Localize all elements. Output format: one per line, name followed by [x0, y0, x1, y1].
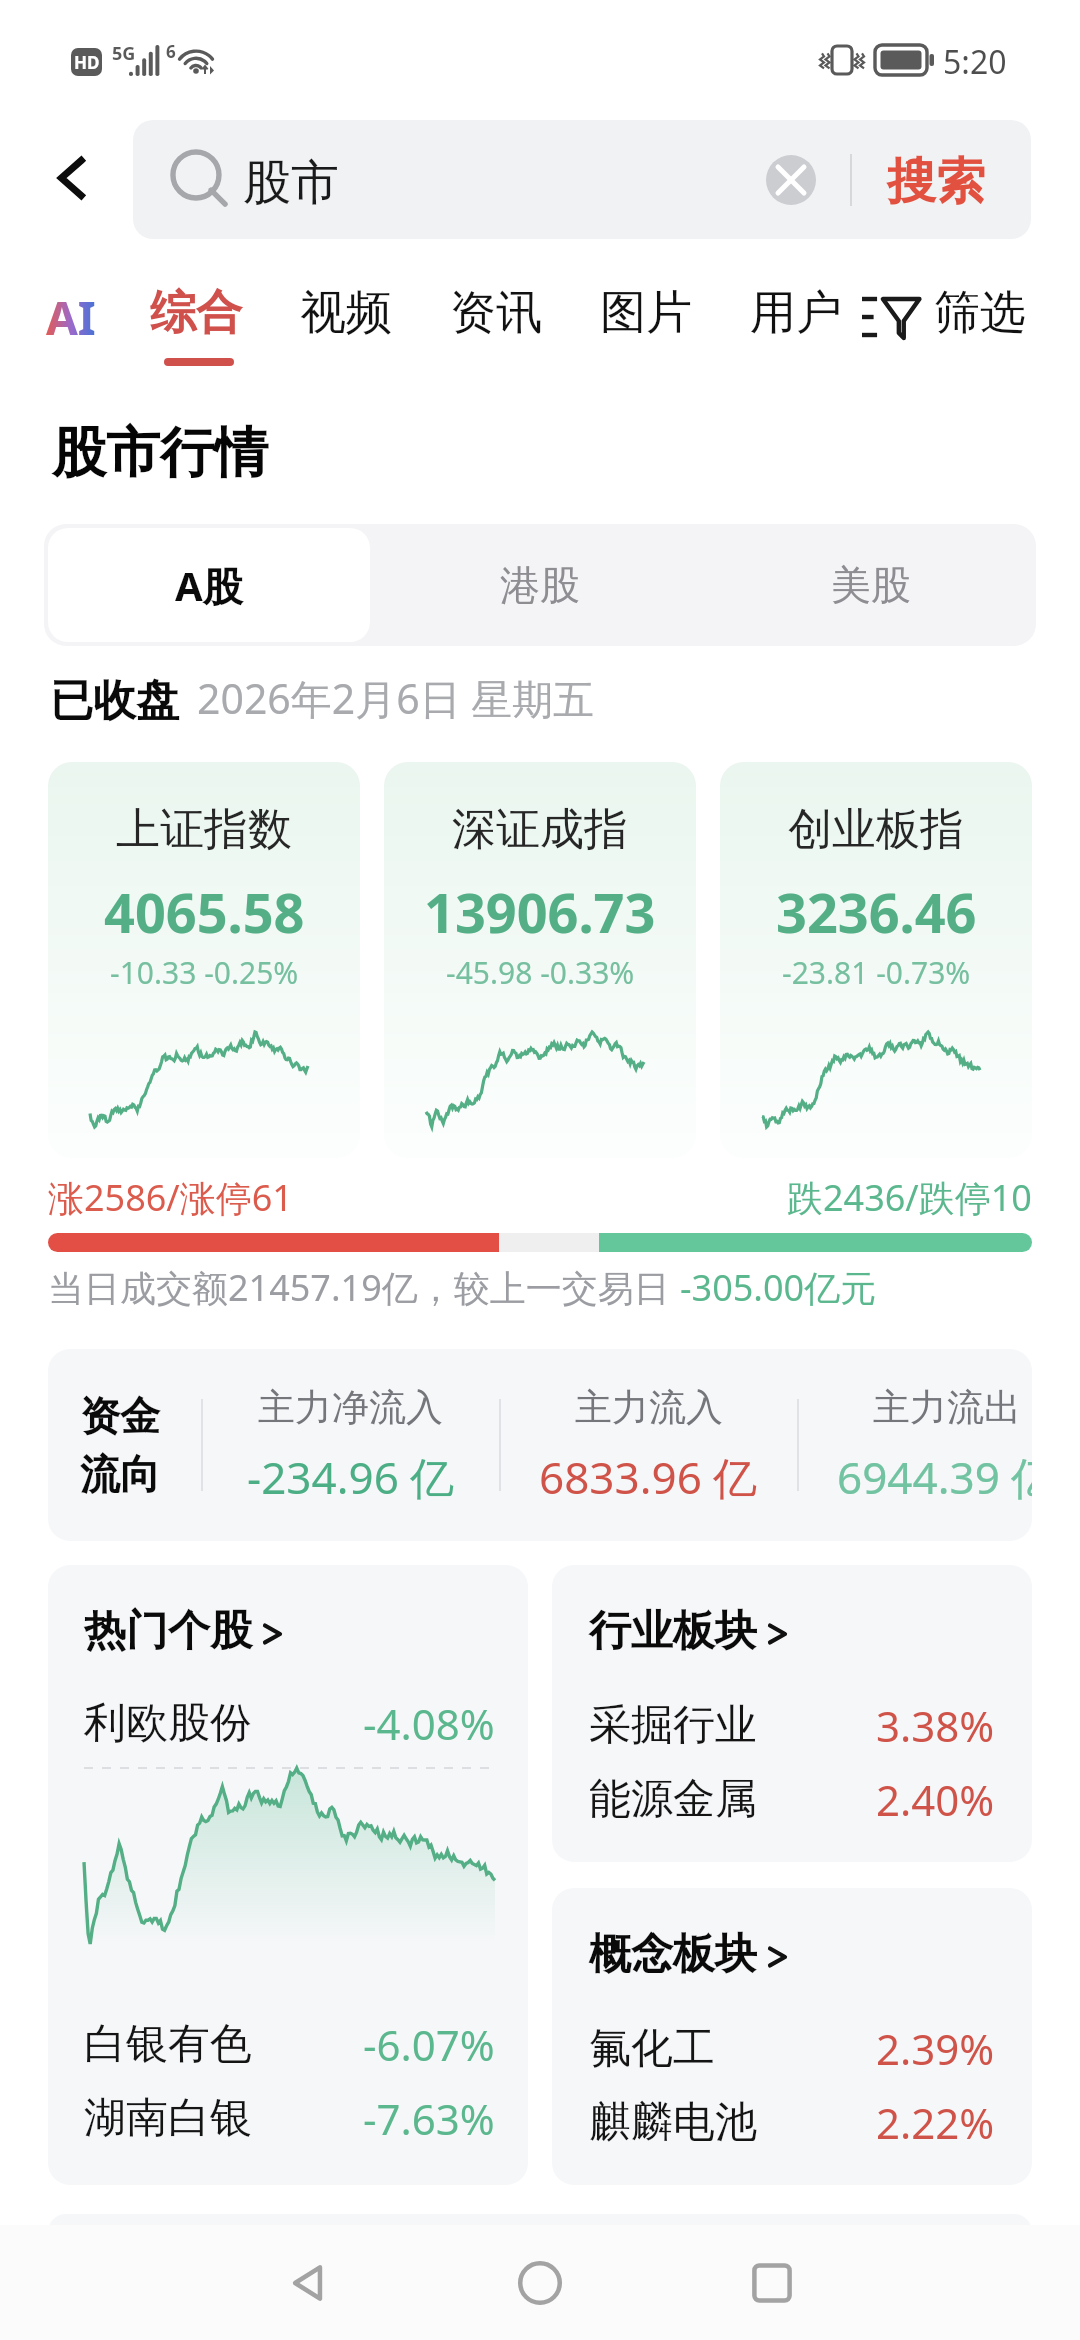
staticText: 深证成指 [452, 802, 628, 857]
button[interactable]: 热门个股 [84, 1605, 282, 1658]
staticText: 筛选 [934, 284, 1026, 342]
staticText: 2.22% [876, 2094, 995, 2151]
staticText: -234.96 亿 [247, 1447, 455, 1507]
staticText: 6944.39 亿 [837, 1447, 1032, 1507]
staticText: 热门个股 [84, 1605, 252, 1658]
staticText: -6.07% [363, 2016, 495, 2073]
staticText: 创业板指 [788, 802, 964, 857]
button[interactable]: 最近任务 [722, 2233, 822, 2333]
staticText: -23.81 -0.73% [782, 952, 971, 993]
staticText: 综合 [150, 284, 242, 342]
staticText: 主力流入 [575, 1384, 723, 1431]
staticText: 利欧股份 [84, 1697, 252, 1750]
staticText: 行业板块 [589, 1605, 757, 1658]
staticText: 已收盘 [50, 674, 179, 728]
button[interactable]: 图片 [600, 284, 692, 342]
staticText: 2.40% [876, 1771, 995, 1828]
staticText: A股 [175, 558, 243, 613]
button[interactable]: 资讯 [450, 284, 542, 342]
staticText: -4.08% [363, 1695, 495, 1752]
button[interactable]: 创业板指 [720, 762, 1032, 1158]
button[interactable]: A股 [48, 528, 370, 642]
staticText: 上证指数 [116, 802, 292, 857]
button[interactable]: 返回 [24, 128, 120, 228]
staticText: 采掘行业 [589, 1699, 757, 1752]
button[interactable]: 氟化工 [589, 2011, 995, 2085]
staticText: 股市 [243, 153, 339, 213]
staticText: 麒麟电池 [589, 2096, 757, 2149]
staticText: 搜索 [887, 151, 985, 213]
staticText: 涨2586/涨停61 [48, 1173, 293, 1222]
button[interactable]: 美股 [705, 524, 1036, 646]
button[interactable]: 深证成指 [384, 762, 696, 1158]
staticText: 能源金属 [589, 1773, 757, 1826]
button[interactable]: 股市 [133, 120, 1031, 239]
button[interactable]: 资金 [48, 1349, 1032, 1541]
staticText: 概念板块 [589, 1928, 757, 1981]
staticText: 3.38% [876, 1697, 995, 1754]
staticText: 美股 [831, 560, 911, 610]
button[interactable]: 能源金属 [589, 1762, 995, 1836]
staticText: 5:20 [943, 40, 1007, 84]
button[interactable]: 综合 [150, 284, 250, 376]
staticText: 主力流出 [873, 1384, 1021, 1431]
button[interactable]: 上证指数 [48, 762, 360, 1158]
button[interactable]: 概念板块 [589, 1928, 787, 1981]
staticText: 主力净流入 [258, 1384, 443, 1431]
staticText: 氟化工 [589, 2022, 715, 2075]
staticText: 6 [166, 40, 176, 63]
button[interactable]: 视频 [300, 284, 392, 342]
button[interactable]: 麒麟电池 [589, 2085, 995, 2159]
button[interactable]: 港股 [374, 524, 705, 646]
staticText: -305.00亿元 [680, 1263, 877, 1312]
staticText: 13906.73 [424, 875, 656, 949]
button[interactable]: 利欧股份 [84, 1686, 495, 1760]
staticText: 股市行情 [52, 419, 268, 487]
staticText: 资金 [80, 1391, 160, 1441]
staticText: 6833.96 亿 [539, 1447, 758, 1507]
staticText: 4065.58 [104, 875, 305, 949]
staticText: 当日成交额21457.19亿，较上一交易日 [48, 1263, 680, 1312]
button[interactable]: 返回 [258, 2233, 358, 2333]
staticText: 2.39% [876, 2020, 995, 2077]
staticText: 跌2436/跌停10 [787, 1173, 1032, 1222]
button[interactable]: 采掘行业 [589, 1688, 995, 1762]
staticText: 5G [112, 41, 136, 66]
staticText: HD [74, 51, 100, 74]
button[interactable]: 用户 [750, 284, 842, 342]
button[interactable]: AI [46, 286, 106, 346]
staticText: 湖南白银 [84, 2092, 252, 2145]
button[interactable]: 行业板块 [589, 1605, 787, 1658]
staticText: -10.33 -0.25% [110, 952, 299, 993]
button[interactable]: 白银有色 [84, 2007, 495, 2081]
button[interactable]: 主页 [490, 2233, 590, 2333]
staticText: 3236.46 [776, 875, 977, 949]
staticText: 流向 [80, 1449, 160, 1499]
button[interactable]: 湖南白银 [84, 2081, 495, 2155]
staticText: 白银有色 [84, 2018, 252, 2071]
staticText: -45.98 -0.33% [446, 952, 635, 993]
button[interactable]: 筛选 [862, 284, 1032, 350]
staticText: 2026年2月6日 星期五 [197, 670, 595, 726]
staticText: 港股 [500, 560, 580, 610]
staticText: -7.63% [363, 2090, 495, 2147]
staticText: AI [46, 286, 96, 346]
button[interactable]: 清除 [766, 155, 816, 205]
